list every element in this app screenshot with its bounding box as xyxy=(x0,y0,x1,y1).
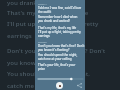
staticText: Remember how I died when xyxy=(38,15,78,19)
staticText: prize xyxy=(38,67,45,71)
button[interactable]: Seek bar xyxy=(38,78,83,80)
staticText: catch me at your ceiling xyxy=(7,81,78,89)
staticText: you drank and waited? xyxy=(7,0,75,6)
staticText: you drank and waited? xyxy=(38,19,70,23)
button[interactable]: Play xyxy=(56,82,63,89)
staticText: earrings xyxy=(7,31,32,39)
staticText: That's my life, that's my life xyxy=(38,26,77,30)
staticText: you know it's fleeting? xyxy=(7,58,74,66)
staticText: You should spend the night, xyxy=(38,53,78,57)
staticText: I'll put up a fight, taking pretty xyxy=(7,19,99,27)
staticText: catch me at your ceiling xyxy=(38,57,72,61)
staticText: That's my life, that's my life xyxy=(7,8,89,16)
staticText: Verse 1 xyxy=(38,2,47,5)
staticText: Don't you know that's fine? Don't xyxy=(38,44,85,48)
staticText: earrings xyxy=(38,34,50,38)
button[interactable]: Share xyxy=(76,82,82,88)
staticText: Told me I was fine, said I'd love xyxy=(38,6,82,10)
staticText: the outfit xyxy=(38,10,52,14)
staticText: Don't you know that's fine? Don't xyxy=(7,46,106,54)
staticText: That's your life, that's your xyxy=(38,63,76,67)
staticText: I'll put up a fight, taking pretty xyxy=(38,30,81,34)
staticText: you know it's fleeting? xyxy=(38,48,70,52)
staticText: Refrain xyxy=(38,40,47,43)
staticText: You should spend the night, xyxy=(7,69,90,77)
